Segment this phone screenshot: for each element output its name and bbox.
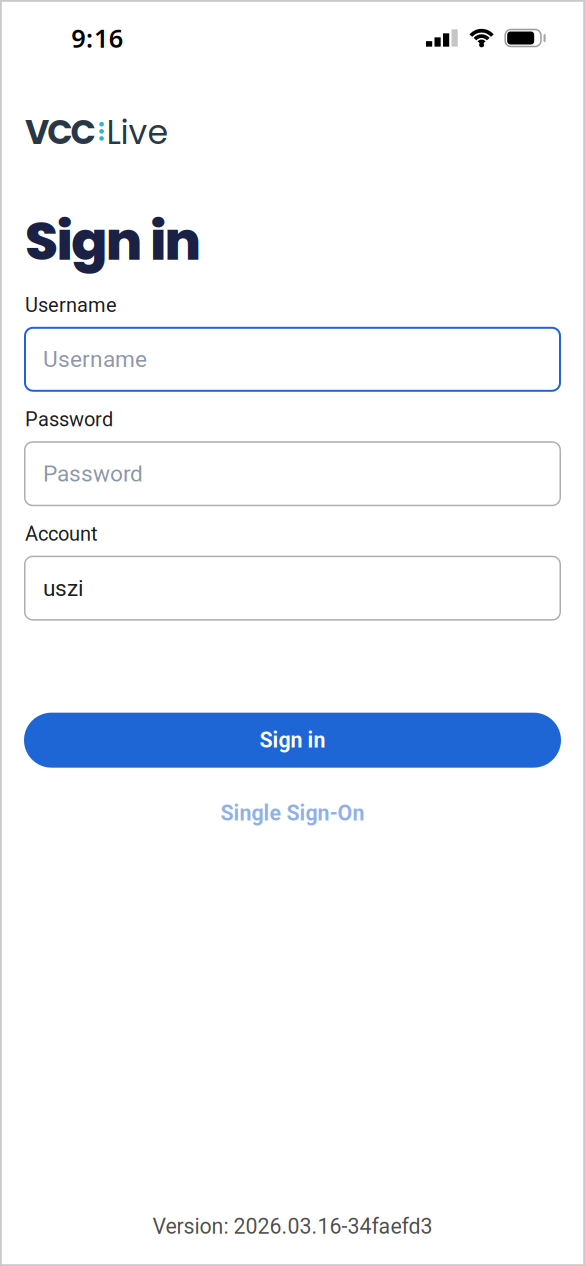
button[interactable]: Single Sign-On <box>220 801 364 826</box>
staticText: Version: 2026.03.16-34faefd3 <box>152 1214 432 1239</box>
staticText: Live <box>107 109 169 156</box>
staticText: VCC <box>25 109 96 156</box>
staticText: Password <box>25 408 113 431</box>
staticText: Sign in <box>259 728 325 753</box>
button[interactable]: Username <box>24 327 561 392</box>
button[interactable]: Password <box>24 441 561 506</box>
staticText: Password <box>43 460 143 487</box>
staticText: Username <box>43 346 147 373</box>
staticText: 9:16 <box>71 21 123 55</box>
staticText: Sign in <box>25 204 202 278</box>
staticText: Account <box>25 522 98 546</box>
staticText: uszi <box>43 575 84 601</box>
button[interactable]: uszi <box>24 556 561 621</box>
staticText: Username <box>25 293 117 317</box>
staticText: Single Sign-On <box>220 801 364 826</box>
button[interactable]: Sign in <box>24 713 561 768</box>
